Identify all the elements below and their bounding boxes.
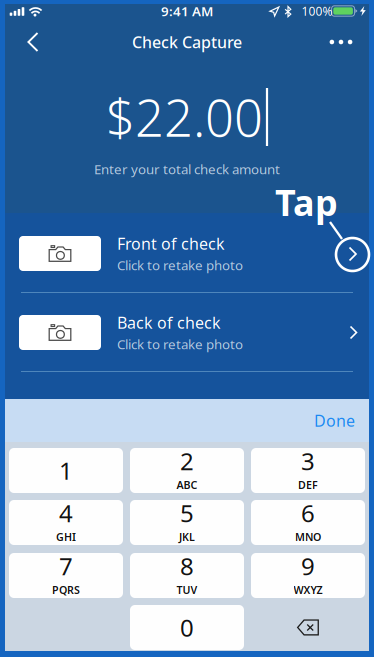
- staticText: JKL: [179, 530, 195, 544]
- staticText: Back of check: [117, 312, 221, 333]
- staticText: 9: [301, 550, 315, 582]
- staticText: 9:41 AM: [161, 2, 213, 20]
- staticText: Check Capture: [132, 31, 242, 53]
- staticText: 8: [180, 550, 194, 582]
- button[interactable]: More options: [319, 20, 363, 64]
- staticText: TUV: [176, 583, 197, 597]
- staticText: Enter your total check amount: [94, 160, 280, 178]
- button[interactable]: Back: [11, 20, 55, 64]
- staticText: 4: [59, 497, 73, 529]
- staticText: GHI: [56, 530, 76, 544]
- button[interactable]: 6: [251, 500, 365, 545]
- staticText: $22.00: [106, 83, 263, 151]
- staticText: 3: [301, 445, 315, 477]
- button[interactable]: 8: [130, 553, 244, 598]
- staticText: WXYZ: [293, 583, 322, 597]
- button[interactable]: 1: [9, 448, 123, 493]
- staticText: PQRS: [52, 583, 80, 597]
- staticText: Tap: [275, 178, 338, 226]
- staticText: 7: [59, 550, 73, 582]
- button[interactable]: 9: [251, 553, 365, 598]
- staticText: ABC: [176, 478, 197, 492]
- staticText: MNO: [295, 530, 321, 544]
- staticText: Click to retake photo: [117, 335, 243, 353]
- staticText: 2: [180, 445, 194, 477]
- staticText: 100%: [301, 3, 332, 19]
- staticText: DEF: [298, 478, 318, 492]
- button[interactable]: 7: [9, 553, 123, 598]
- button[interactable]: Done: [259, 399, 369, 442]
- button[interactable]: 0: [130, 605, 244, 650]
- button[interactable]: 2: [130, 448, 244, 493]
- staticText: Done: [314, 410, 355, 431]
- button[interactable]: Front of check: [5, 214, 369, 293]
- button[interactable]: Delete: [251, 605, 365, 650]
- staticText: 1: [59, 455, 73, 486]
- staticText: Front of check: [117, 233, 225, 254]
- staticText: 0: [180, 612, 194, 643]
- staticText: 5: [180, 497, 194, 529]
- staticText: 6: [301, 497, 315, 529]
- staticText: Click to retake photo: [117, 256, 243, 274]
- button[interactable]: 4: [9, 500, 123, 545]
- button[interactable]: Back of check: [5, 293, 369, 372]
- button[interactable]: 5: [130, 500, 244, 545]
- button[interactable]: 3: [251, 448, 365, 493]
